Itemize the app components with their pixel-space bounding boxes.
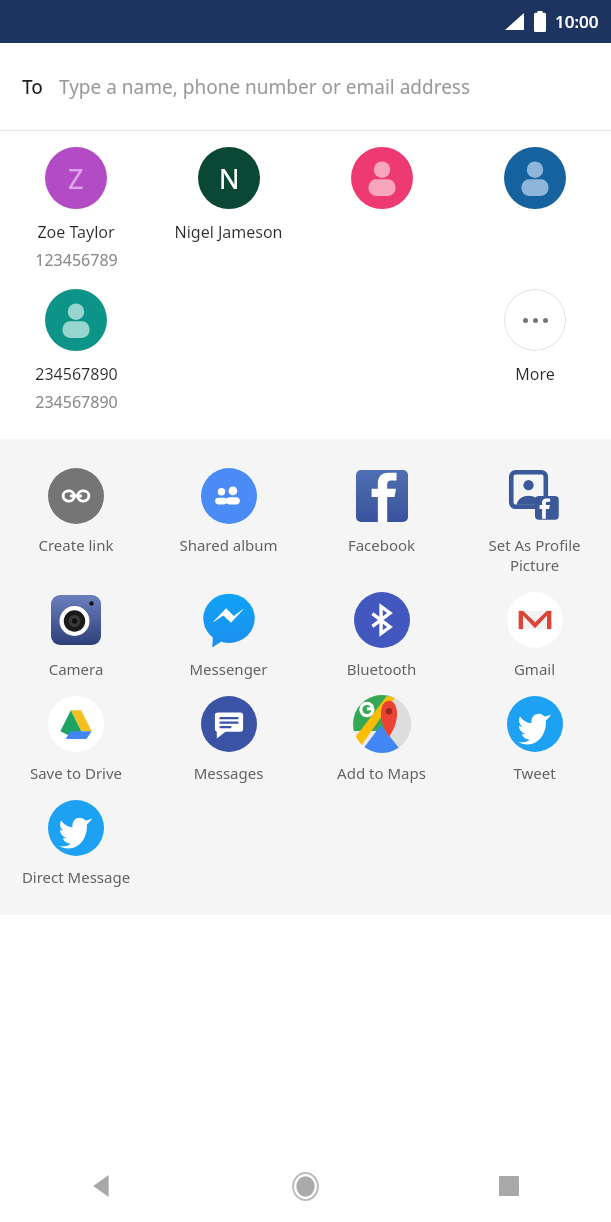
staticText: N	[219, 160, 240, 197]
button[interactable]: Shared album	[152, 459, 305, 563]
staticText: Type a name, phone number or email addre…	[59, 74, 471, 100]
staticText: 234567890	[35, 391, 118, 413]
staticText: Add to Maps	[307, 763, 456, 783]
staticText: To	[22, 74, 43, 100]
button[interactable]: Bluetooth	[305, 583, 458, 687]
button[interactable]: Tweet	[458, 687, 611, 791]
button[interactable]: Recent apps	[407, 1150, 611, 1222]
button[interactable]: Messenger	[152, 583, 305, 687]
button[interactable]: Messages	[152, 687, 305, 791]
button[interactable]	[305, 147, 458, 209]
staticText: Camera	[2, 659, 150, 679]
staticText: Shared album	[154, 535, 303, 555]
staticText: Gmail	[460, 659, 609, 679]
staticText: 10:00	[555, 10, 599, 33]
button[interactable]: Save to Drive	[0, 687, 152, 791]
button[interactable]: Set As Profile Picture	[458, 459, 611, 583]
staticText: Save to Drive	[2, 763, 150, 783]
staticText: 123456789	[35, 249, 118, 271]
button[interactable]: More	[458, 289, 611, 385]
button[interactable]: Camera	[0, 583, 152, 687]
button[interactable]: Gmail	[458, 583, 611, 687]
button[interactable]	[458, 147, 611, 209]
button[interactable]: 234567890	[0, 289, 152, 413]
button[interactable]: To	[0, 43, 611, 130]
button[interactable]: N	[152, 147, 305, 243]
button[interactable]: Direct Message	[0, 791, 152, 895]
button[interactable]: Back	[0, 1150, 203, 1222]
button[interactable]: Add to Maps	[305, 687, 458, 791]
staticText: Set As Profile Picture	[460, 535, 609, 575]
button[interactable]: Create link	[0, 459, 152, 563]
button[interactable]: Z	[0, 147, 152, 271]
staticText: Facebook	[307, 535, 456, 555]
staticText: Direct Message	[2, 867, 150, 887]
staticText: Z	[68, 160, 84, 197]
staticText: Bluetooth	[307, 659, 456, 679]
button[interactable]: Home	[203, 1150, 407, 1222]
button[interactable]: Facebook	[305, 459, 458, 563]
staticText: Tweet	[460, 763, 609, 783]
staticText: Messenger	[154, 659, 303, 679]
staticText: Create link	[2, 535, 150, 555]
staticText: Messages	[154, 763, 303, 783]
staticText: Nigel Jameson	[174, 221, 283, 243]
staticText: More	[515, 363, 555, 385]
staticText: 234567890	[35, 363, 118, 385]
staticText: Zoe Taylor	[37, 221, 115, 243]
